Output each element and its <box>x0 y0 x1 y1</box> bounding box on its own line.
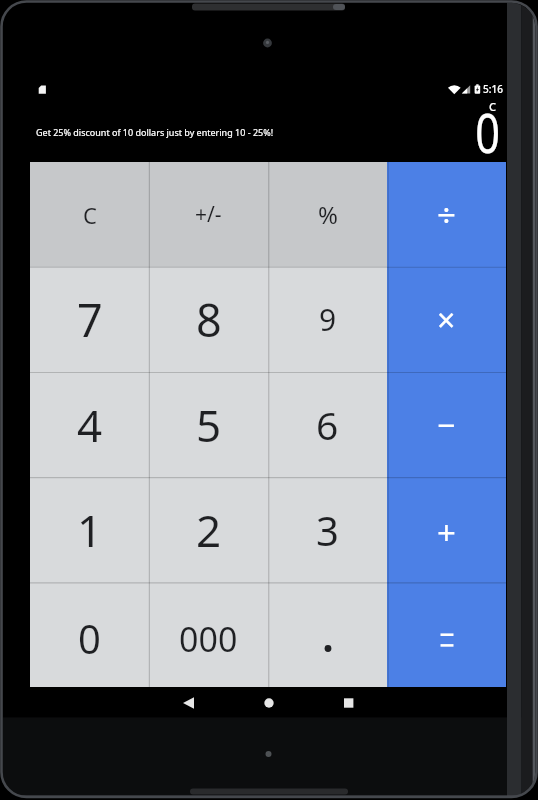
staticText: 000 <box>179 616 238 662</box>
button[interactable] <box>387 582 506 687</box>
staticText: 7 <box>77 289 103 350</box>
staticText: 0 <box>78 611 101 665</box>
button[interactable]: ÷ <box>387 162 506 267</box>
button[interactable]: C <box>30 162 149 267</box>
button[interactable]: 9 <box>268 267 387 372</box>
staticText: C <box>489 99 496 114</box>
staticText: ÷ <box>437 192 456 237</box>
button[interactable] <box>174 688 204 718</box>
staticText: + <box>437 510 456 555</box>
button[interactable]: − <box>387 372 506 477</box>
staticText: 6 <box>316 398 339 451</box>
button[interactable]: + <box>387 477 506 582</box>
staticText: 5 <box>196 395 222 455</box>
staticText: Get 25% discount of 10 dollars just by e… <box>36 126 274 138</box>
staticText: % <box>318 198 338 231</box>
staticText: 1 <box>77 500 103 560</box>
button[interactable] <box>254 688 284 718</box>
button[interactable]: 8 <box>149 267 268 372</box>
button[interactable]: 7 <box>30 267 149 372</box>
staticText: C <box>83 200 97 230</box>
staticText: 2 <box>196 500 222 560</box>
button[interactable]: × <box>387 267 506 372</box>
button[interactable]: % <box>268 162 387 267</box>
staticText: 0 <box>475 95 500 169</box>
button[interactable]: 3 <box>268 477 387 582</box>
button[interactable]: 2 <box>149 477 268 582</box>
button[interactable]: 000 <box>149 582 268 687</box>
button[interactable] <box>333 688 363 718</box>
button[interactable]: +/- <box>149 162 268 267</box>
staticText: 5:16 <box>483 82 503 96</box>
button[interactable]: 4 <box>30 372 149 477</box>
staticText: +/- <box>195 200 222 229</box>
staticText: 9 <box>319 299 337 340</box>
staticText: × <box>437 298 456 342</box>
staticText: 8 <box>196 289 222 350</box>
button[interactable]: 5 <box>149 372 268 477</box>
staticText: 3 <box>316 503 339 557</box>
staticText: − <box>437 403 456 447</box>
button[interactable]: 6 <box>268 372 387 477</box>
button[interactable] <box>268 582 387 687</box>
button[interactable]: Get 25% discount of 10 dollars just by e… <box>30 121 508 141</box>
staticText: 4 <box>77 395 103 455</box>
button[interactable]: 0 <box>30 582 149 687</box>
button[interactable]: 1 <box>30 477 149 582</box>
